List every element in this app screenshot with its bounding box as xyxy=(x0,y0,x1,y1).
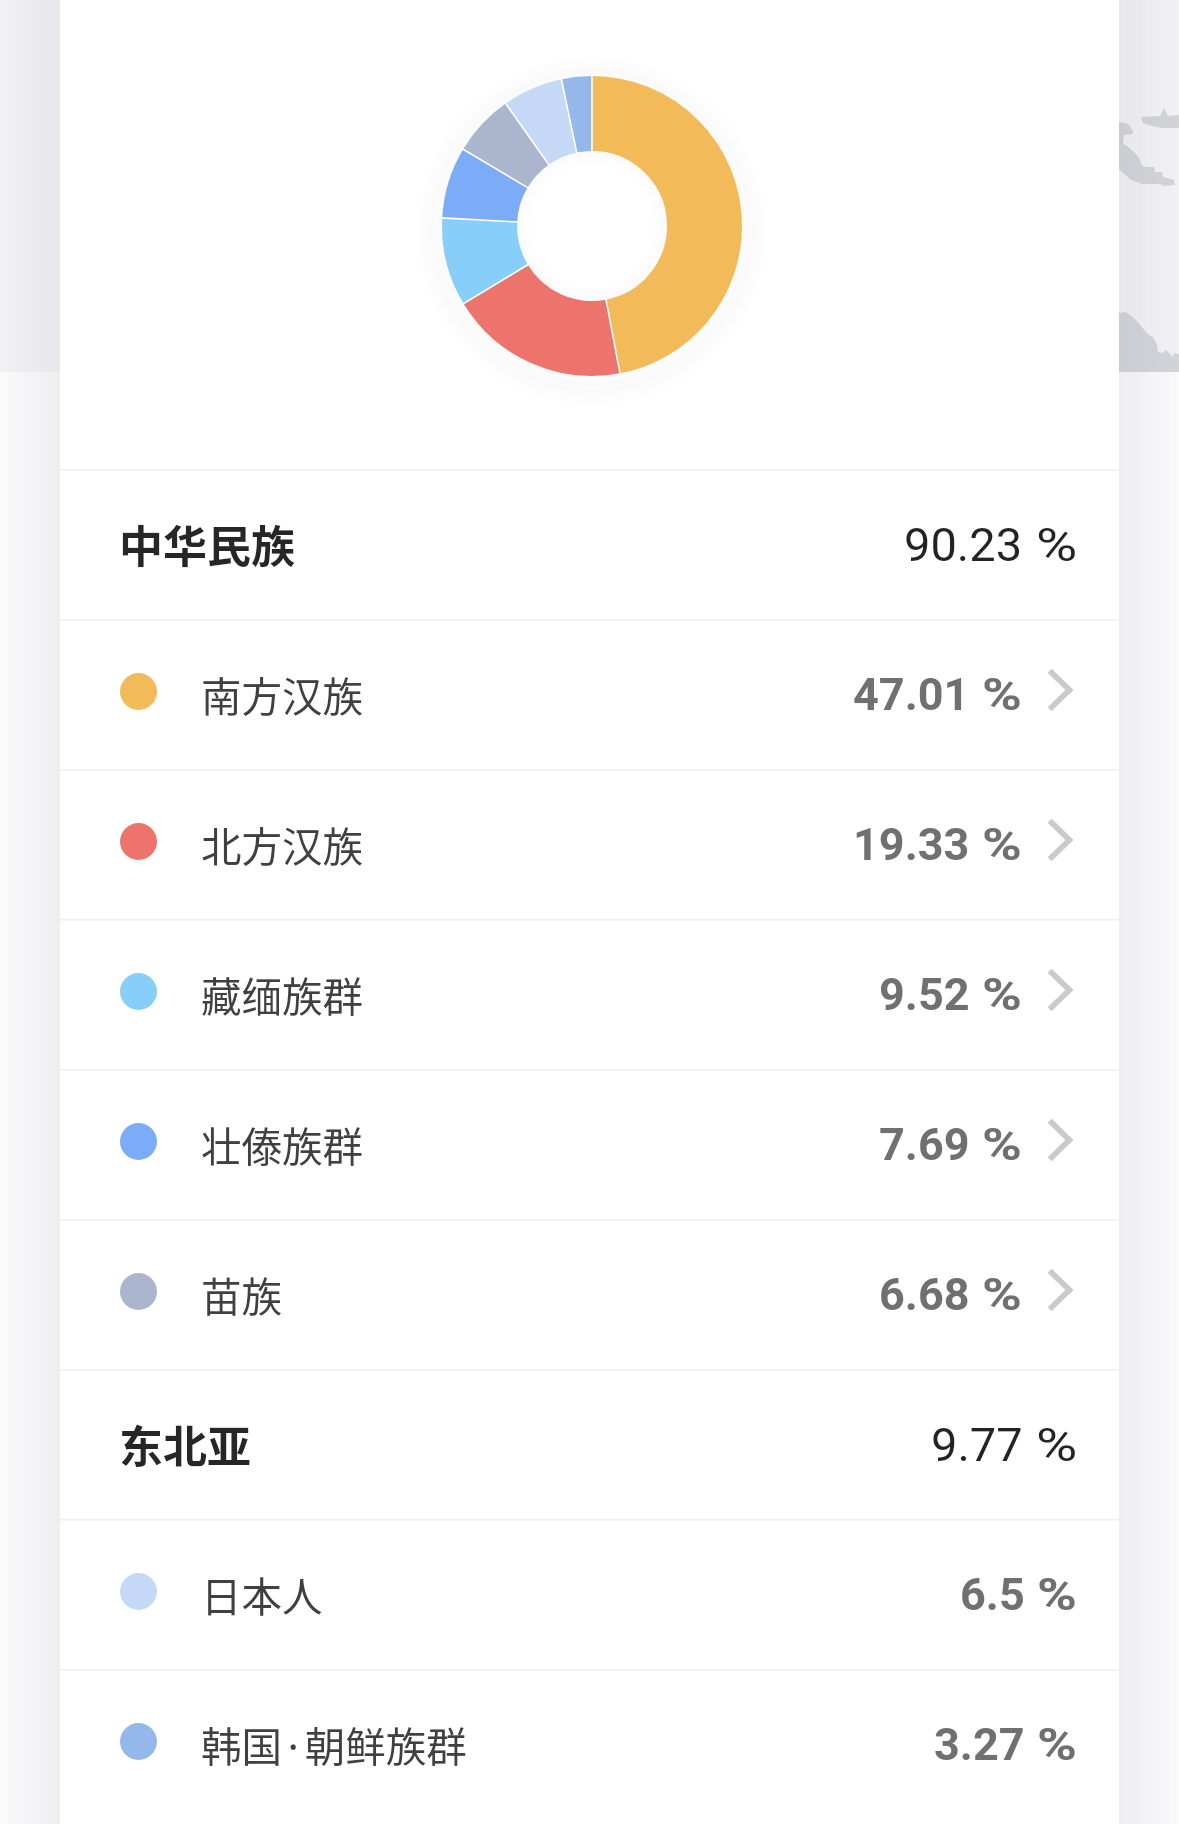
staticText: 9.77 xyxy=(931,1417,1023,1472)
staticText: % xyxy=(982,818,1023,871)
staticText: 6.5 xyxy=(960,1568,1025,1621)
button[interactable]: 日本人 xyxy=(60,1519,1119,1669)
staticText: 90.23 xyxy=(904,517,1023,572)
staticText: % xyxy=(982,668,1023,721)
staticText: % xyxy=(1036,1417,1078,1472)
staticText: % xyxy=(1037,1718,1078,1771)
button[interactable]: 东北亚 xyxy=(60,1369,1119,1519)
staticText: 3.27 xyxy=(934,1718,1025,1771)
staticText: % xyxy=(982,1268,1023,1321)
button[interactable]: 北方汉族 xyxy=(60,769,1119,919)
staticText: 南方汉族 xyxy=(201,665,363,724)
button[interactable]: 苗族 xyxy=(60,1219,1119,1369)
staticText: 47.01 xyxy=(853,668,970,721)
button[interactable]: 南方汉族 xyxy=(60,619,1119,769)
staticText: 壮傣族群 xyxy=(201,1115,363,1174)
staticText: 6.68 xyxy=(879,1268,970,1321)
staticText: 北方汉族 xyxy=(201,815,363,874)
staticText: 日本人 xyxy=(201,1565,323,1624)
staticText: 9.52 xyxy=(879,968,970,1021)
staticText: 中华民族 xyxy=(119,512,295,576)
staticText: % xyxy=(982,1118,1023,1171)
staticText: 7.69 xyxy=(879,1118,970,1171)
button[interactable]: 壮傣族群 xyxy=(60,1069,1119,1219)
staticText: 藏缅族群 xyxy=(201,965,363,1024)
staticText: % xyxy=(1036,517,1078,572)
button[interactable]: 藏缅族群 xyxy=(60,919,1119,1069)
staticText: % xyxy=(1037,1568,1078,1621)
button[interactable]: 韩国·朝鲜族群 xyxy=(60,1669,1119,1819)
button[interactable]: 中华民族 xyxy=(60,469,1119,619)
staticText: 苗族 xyxy=(201,1265,282,1324)
staticText: 19.33 xyxy=(853,818,970,871)
staticText: 韩国·朝鲜族群 xyxy=(201,1715,467,1774)
staticText: % xyxy=(982,968,1023,1021)
staticText: 东北亚 xyxy=(119,1412,251,1476)
